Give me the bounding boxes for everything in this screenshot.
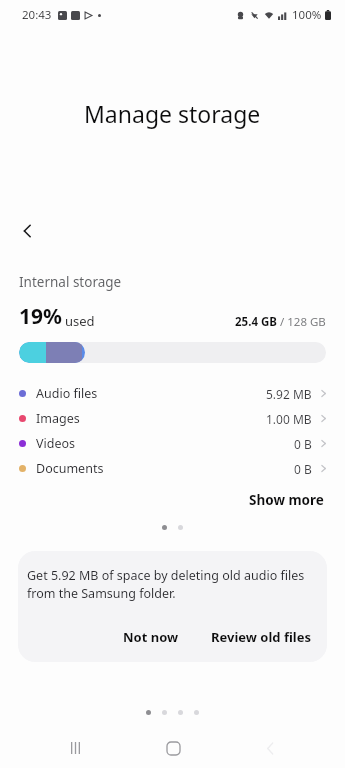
staticText: Manage storage [84, 98, 261, 129]
button[interactable]: Recent apps [55, 728, 95, 768]
staticText: Documents [36, 460, 104, 477]
staticText: 25.4 GB [235, 314, 280, 330]
staticText: Internal storage [19, 273, 122, 291]
staticText: Show more [249, 491, 324, 509]
staticText: 0 B [294, 436, 312, 452]
staticText: 0 B [294, 461, 312, 477]
button[interactable]: Audio files [0, 381, 345, 406]
button[interactable]: Not now [117, 624, 185, 650]
staticText: 5.92 MB [266, 386, 312, 402]
button[interactable]: Images [0, 406, 345, 431]
staticText: Audio files [36, 385, 98, 402]
button[interactable]: Videos [0, 431, 345, 456]
staticText: 20:43 [22, 7, 52, 23]
staticText: Get 5.92 MB of space by deleting old aud… [27, 567, 318, 602]
button[interactable]: Show more [247, 487, 326, 513]
staticText: Review old files [211, 628, 312, 646]
button[interactable]: Review old files [205, 624, 318, 650]
staticText: 100% [292, 7, 322, 23]
staticText: 1.00 MB [266, 411, 312, 427]
staticText: Images [36, 410, 80, 427]
button[interactable]: Back [10, 213, 46, 249]
staticText: Videos [36, 435, 76, 452]
button[interactable]: Get 5.92 MB of space by deleting old aud… [18, 551, 327, 662]
staticText: / 128 GB [280, 314, 326, 330]
button[interactable]: Home [153, 728, 193, 768]
staticText: used [65, 312, 95, 330]
staticText: Not now [123, 628, 179, 646]
staticText: 19% [19, 302, 62, 331]
button[interactable]: Documents [0, 456, 345, 481]
